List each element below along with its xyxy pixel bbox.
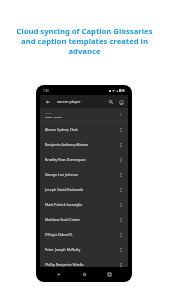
button[interactable]: Mark Patrick Incaviglia: [40, 197, 128, 212]
staticText: soccer player: [57, 99, 81, 104]
button[interactable]: Alonso Sydney Clark: [40, 122, 128, 137]
button[interactable]: Phillip Benjamin Vitiello: [40, 257, 128, 272]
button[interactable]: Joseph David Kozlowski: [40, 182, 128, 197]
staticText: Alonso Sydney Clark: [45, 127, 79, 132]
button[interactable]: Home: [78, 268, 91, 281]
button[interactable]: Peter Joseph McNulty: [40, 242, 128, 257]
button[interactable]: Back: [43, 97, 53, 107]
button[interactable]: D'Koyia Eldred R.: [40, 227, 128, 242]
staticText: Mark Patrick Incaviglia: [45, 202, 83, 207]
button[interactable]: Recents: [103, 268, 116, 281]
staticText: Joseph David Kozlowski: [45, 187, 84, 192]
staticText: Cloud syncing of Caption Glossaries and …: [14, 26, 155, 56]
staticText: Peter Joseph McNulty: [45, 247, 81, 252]
staticText: Benjamin Anthony Altman: [45, 142, 89, 147]
button[interactable]: Benjamin Anthony Altman: [40, 137, 128, 152]
staticText: Sports - Soccer: [45, 115, 62, 118]
button[interactable]: Account: [116, 97, 126, 107]
staticText: Phillip Benjamin Vitiello: [45, 262, 84, 267]
button[interactable]: Group: [40, 108, 128, 121]
staticText: D'Koyia Eldred R.: [45, 232, 73, 237]
button[interactable]: Search: [106, 97, 116, 107]
staticText: Matthew Scott Carter: [45, 217, 80, 222]
button[interactable]: Bradley Ross Dominguez: [40, 152, 128, 167]
button[interactable]: George Lee Johnson: [40, 167, 128, 182]
staticText: Group: [45, 111, 53, 114]
staticText: 7:33: [43, 89, 49, 93]
button[interactable]: Back: [52, 268, 65, 281]
button[interactable]: Matthew Scott Carter: [40, 212, 128, 227]
staticText: George Lee Johnson: [45, 172, 79, 177]
staticText: Bradley Ross Dominguez: [45, 157, 86, 162]
